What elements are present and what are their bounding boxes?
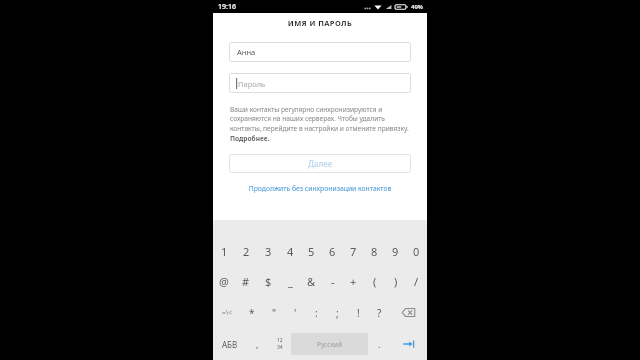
- staticText: 1: [221, 244, 228, 259]
- staticText: ': [294, 306, 297, 320]
- staticText: 8: [371, 244, 378, 259]
- staticText: 12: [277, 337, 283, 344]
- staticText: 5: [308, 244, 315, 259]
- button[interactable]: #: [235, 266, 257, 297]
- staticText: .: [378, 338, 381, 350]
- button[interactable]: 2: [235, 236, 257, 266]
- button[interactable]: Продолжить без синхронизации контактов: [213, 184, 427, 193]
- staticText: 49%: [411, 3, 423, 11]
- button[interactable]: _: [279, 266, 301, 297]
- button[interactable]: ': [285, 297, 306, 328]
- button[interactable]: (: [364, 266, 385, 297]
- button[interactable]: 1: [213, 236, 235, 266]
- staticText: =\<: [222, 308, 232, 317]
- button[interactable]: ): [385, 266, 406, 297]
- button[interactable]: !: [348, 297, 369, 328]
- staticText: *: [249, 306, 255, 320]
- staticText: _: [288, 274, 293, 289]
- staticText: (: [373, 274, 377, 289]
- button[interactable]: Анна: [229, 42, 411, 62]
- button[interactable]: :: [306, 297, 327, 328]
- button[interactable]: 3: [257, 236, 279, 266]
- staticText: @: [219, 274, 229, 289]
- button[interactable]: Далее: [229, 154, 411, 173]
- staticText: Русский: [317, 340, 342, 349]
- staticText: 2: [243, 244, 250, 259]
- staticText: /: [414, 274, 419, 289]
- staticText: :: [315, 306, 318, 320]
- button[interactable]: /: [406, 266, 427, 297]
- staticText: Далее: [308, 158, 333, 169]
- staticText: ,: [256, 338, 259, 350]
- staticText: $: [265, 274, 272, 289]
- staticText: 9: [392, 244, 399, 259]
- button[interactable]: 12: [268, 328, 291, 360]
- staticText: 7: [350, 244, 357, 259]
- button[interactable]: 0: [406, 236, 427, 266]
- button[interactable]: +: [343, 266, 364, 297]
- button[interactable]: *: [241, 297, 263, 328]
- staticText: ;: [336, 306, 339, 320]
- button[interactable]: 9: [385, 236, 406, 266]
- staticText: 0: [413, 244, 420, 259]
- staticText: 4: [287, 244, 294, 259]
- staticText: Продолжить без синхронизации контактов: [213, 184, 427, 193]
- staticText: &: [307, 274, 316, 289]
- staticText: #: [242, 274, 250, 289]
- staticText: Пароль: [238, 79, 266, 89]
- button[interactable]: @: [213, 266, 235, 297]
- button[interactable]: ?: [369, 297, 390, 328]
- button[interactable]: 7: [343, 236, 364, 266]
- button[interactable]: -: [322, 266, 343, 297]
- button[interactable]: 4: [279, 236, 301, 266]
- staticText: 6: [329, 244, 336, 259]
- button[interactable]: ;: [327, 297, 348, 328]
- staticText: Анна: [237, 47, 256, 57]
- staticText: ИМЯ И ПАРОЛЬ: [213, 18, 427, 28]
- button[interactable]: =\<: [213, 297, 241, 328]
- button[interactable]: АБВ: [213, 328, 246, 360]
- staticText: ?: [377, 306, 382, 320]
- staticText: 19:16: [218, 2, 236, 12]
- button[interactable]: Русский: [291, 333, 368, 355]
- button[interactable]: Next: [391, 328, 427, 360]
- staticText: 34: [277, 344, 283, 351]
- staticText: !: [357, 306, 360, 320]
- button[interactable]: ,: [246, 328, 268, 360]
- button[interactable]: 5: [301, 236, 322, 266]
- button[interactable]: 6: [322, 236, 343, 266]
- staticText: ": [272, 306, 277, 320]
- button[interactable]: &: [301, 266, 322, 297]
- button[interactable]: Пароль: [229, 73, 411, 93]
- staticText: Ваши контакты регулярно синхронизируются…: [230, 105, 410, 143]
- staticText: АБВ: [222, 339, 238, 350]
- button[interactable]: .: [368, 328, 391, 360]
- button[interactable]: ": [263, 297, 285, 328]
- staticText: -: [331, 274, 335, 289]
- button[interactable]: 8: [364, 236, 385, 266]
- button[interactable]: Backspace: [390, 297, 427, 328]
- button[interactable]: $: [257, 266, 279, 297]
- staticText: +: [350, 274, 357, 289]
- staticText: 3: [265, 244, 272, 259]
- staticText: ): [394, 274, 398, 289]
